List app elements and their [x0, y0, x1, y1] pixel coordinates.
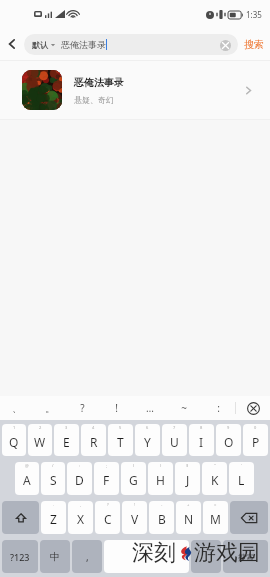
staticText: I: [199, 434, 204, 450]
staticText: H: [156, 472, 165, 488]
staticText: 搜索: [244, 38, 264, 51]
button[interactable]: 6: [135, 424, 160, 456]
staticText: 3: [65, 425, 68, 430]
button[interactable]: 1: [2, 424, 26, 456]
button[interactable]: 搜索: [244, 38, 264, 51]
staticText: U: [170, 434, 179, 450]
button[interactable]: ?: [66, 396, 99, 420]
button[interactable]: Comma: [72, 540, 102, 573]
staticText: -: [161, 502, 163, 507]
button[interactable]: Space: [104, 540, 189, 573]
button[interactable]: Period: [191, 540, 221, 573]
staticText: 0: [254, 425, 257, 430]
button[interactable]: +: [176, 501, 201, 534]
button[interactable]: 4: [81, 424, 106, 456]
staticText: Z: [50, 511, 57, 527]
staticText: 6: [146, 425, 149, 430]
staticText: N: [184, 511, 194, 527]
staticText: B: [158, 511, 166, 527]
button[interactable]: …: [133, 396, 167, 420]
button[interactable]: ): [148, 462, 173, 495]
staticText: =: [214, 502, 217, 507]
button[interactable]: 默认: [24, 34, 238, 55]
staticText: 5: [119, 425, 122, 430]
button[interactable]: Search: [223, 540, 268, 573]
button[interactable]: ?: [95, 501, 120, 534]
staticText: .: [53, 502, 55, 507]
button[interactable]: ': [229, 462, 254, 495]
button[interactable]: /: [41, 462, 65, 495]
staticText: ,: [86, 550, 89, 564]
button[interactable]: 恶俺法事录: [0, 61, 270, 119]
staticText: 恶俺法事录: [74, 76, 124, 89]
staticText: X: [77, 511, 85, 527]
button[interactable]: ,: [68, 501, 93, 534]
staticText: P: [252, 434, 260, 450]
button[interactable]: ~: [167, 396, 201, 420]
button[interactable]: 3: [54, 424, 79, 456]
staticText: :: [79, 463, 81, 468]
staticText: O: [224, 434, 234, 450]
button[interactable]: 0: [243, 424, 268, 456]
button[interactable]: Open: [238, 80, 258, 100]
staticText: Y: [144, 434, 151, 450]
staticText: .: [205, 550, 208, 564]
staticText: D: [75, 472, 84, 488]
staticText: :: [217, 401, 220, 415]
button[interactable]: (: [121, 462, 146, 495]
button[interactable]: :: [67, 462, 92, 495]
staticText: J: [186, 472, 190, 488]
button[interactable]: $: [175, 462, 200, 495]
staticText: 7: [173, 425, 176, 430]
button[interactable]: Clear: [216, 36, 234, 54]
staticText: ~: [181, 401, 187, 415]
staticText: 默认: [32, 40, 48, 50]
button[interactable]: =: [203, 501, 228, 534]
button[interactable]: 2: [28, 424, 52, 456]
staticText: M: [210, 511, 221, 527]
staticText: 9: [227, 425, 230, 430]
staticText: (: [133, 463, 135, 468]
button[interactable]: ;: [94, 462, 119, 495]
button[interactable]: Shift: [2, 501, 39, 534]
staticText: $: [186, 463, 189, 468]
staticText: S: [50, 472, 57, 488]
button[interactable]: .: [41, 501, 66, 534]
button[interactable]: 。: [33, 396, 66, 420]
staticText: 游戏园: [194, 539, 260, 567]
button[interactable]: Backspace: [230, 501, 268, 534]
staticText: R: [90, 434, 98, 450]
staticText: L: [238, 472, 245, 488]
staticText: !: [115, 401, 118, 415]
staticText: K: [211, 472, 219, 488]
staticText: ): [160, 463, 162, 468]
button[interactable]: Language: [40, 540, 70, 573]
staticText: E: [63, 434, 70, 450]
staticText: ': [241, 463, 242, 468]
staticText: A: [23, 472, 31, 488]
button[interactable]: Close keyboard: [236, 396, 270, 420]
button[interactable]: Symbols: [2, 540, 38, 573]
staticText: V: [131, 511, 139, 527]
button[interactable]: 、: [0, 396, 33, 420]
button[interactable]: ": [202, 462, 227, 495]
staticText: /: [52, 463, 54, 468]
button[interactable]: 9: [216, 424, 241, 456]
button[interactable]: !: [122, 501, 147, 534]
button[interactable]: 5: [108, 424, 133, 456]
staticText: ?: [107, 502, 109, 507]
staticText: 1:35: [246, 9, 262, 20]
button[interactable]: !: [99, 396, 133, 420]
staticText: 深刻: [132, 539, 176, 567]
button[interactable]: :: [201, 396, 235, 420]
staticText: ,: [80, 502, 82, 507]
button[interactable]: Back: [0, 28, 24, 60]
staticText: T: [117, 434, 124, 450]
staticText: !: [134, 502, 136, 507]
button[interactable]: @: [15, 462, 39, 495]
button[interactable]: 7: [162, 424, 187, 456]
button[interactable]: 8: [189, 424, 214, 456]
staticText: F: [103, 472, 110, 488]
button[interactable]: -: [149, 501, 174, 534]
staticText: @: [25, 463, 29, 468]
